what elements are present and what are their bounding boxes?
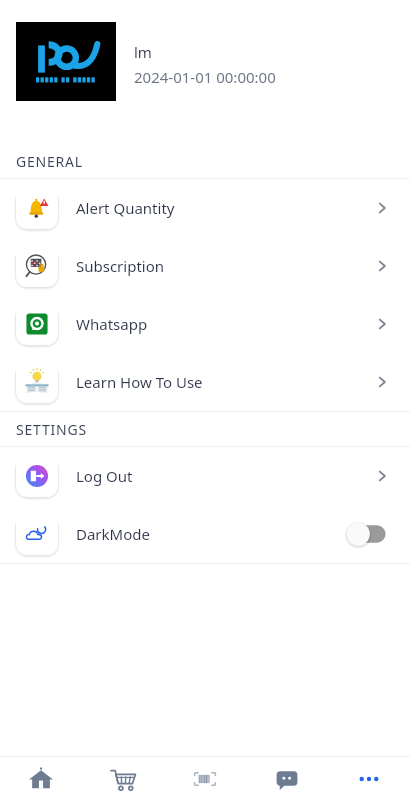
button[interactable]: Alert Quantity [0,179,410,237]
button[interactable]: Subscription [0,237,410,295]
staticText: GENERAL [16,152,83,171]
staticText: lm [134,42,152,62]
staticText: Alert Quantity [76,198,175,218]
button[interactable]: Log Out [0,447,410,505]
staticText: SETTINGS [16,420,87,439]
staticText: Learn How To Use [76,372,203,392]
button[interactable]: DarkMode [0,505,410,563]
button[interactable]: Learn How To Use [0,353,410,411]
button[interactable]: Scan [164,757,246,800]
staticText: DarkMode [76,524,150,544]
button[interactable]: Whatsapp [0,295,410,353]
button[interactable]: More [328,757,410,800]
button[interactable]: Home [0,757,82,800]
button[interactable]: DarkMode toggle [346,522,390,546]
staticText: Whatsapp [76,314,148,334]
staticText: 2024-01-01 00:00:00 [134,67,276,87]
staticText: Log Out [76,466,133,486]
button[interactable]: Cart [82,757,164,800]
staticText: Subscription [76,256,165,276]
button[interactable]: Chat [246,757,328,800]
